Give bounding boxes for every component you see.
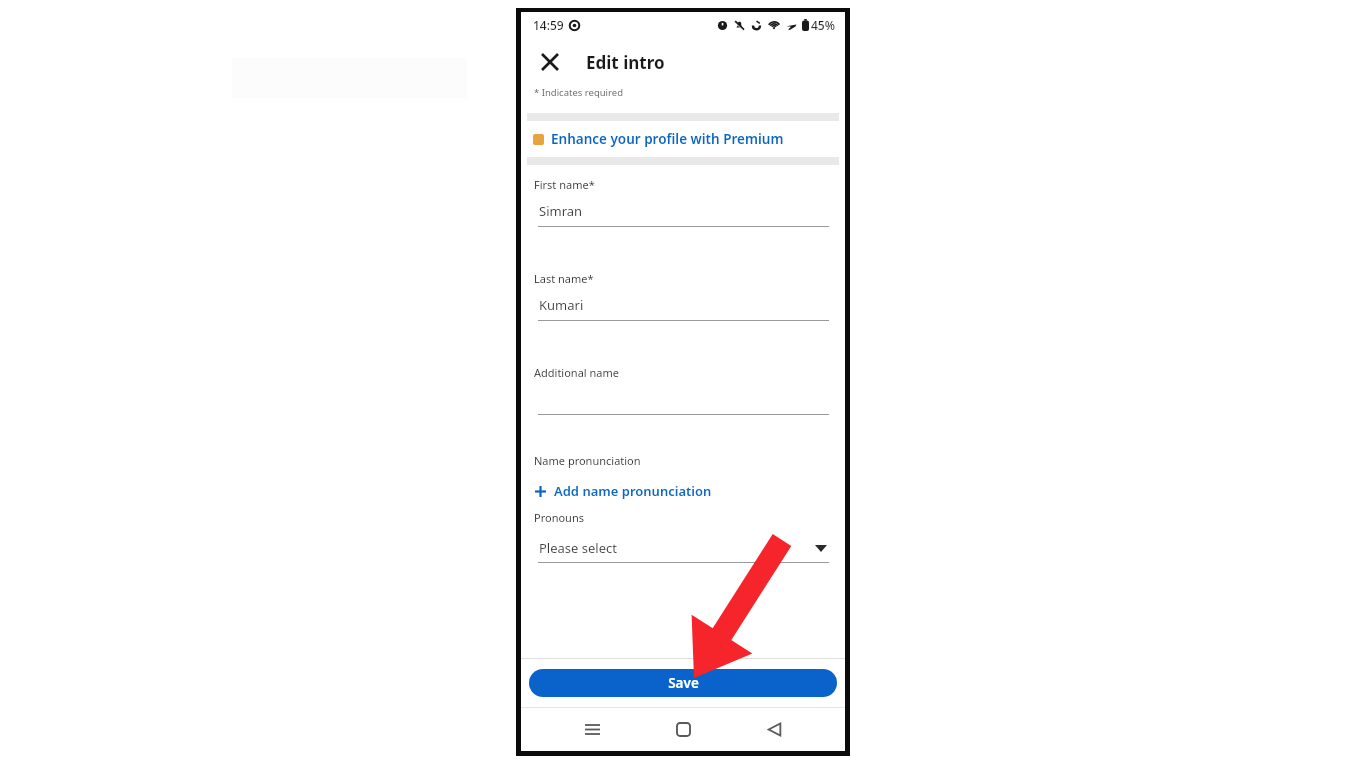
- staticText: * Indicates required: [534, 86, 623, 99]
- button[interactable]: Save: [529, 669, 837, 697]
- button[interactable]: Home: [663, 709, 703, 749]
- staticText: Simran: [539, 202, 583, 220]
- staticText: Save: [668, 674, 699, 692]
- button[interactable]: Please select: [521, 537, 845, 563]
- button[interactable]: Simran: [521, 202, 845, 227]
- staticText: Pronouns: [534, 510, 584, 525]
- staticText: Additional name: [534, 365, 619, 380]
- staticText: Enhance your profile with Premium: [551, 130, 784, 148]
- staticText: Kumari: [539, 296, 584, 314]
- button[interactable]: Back: [754, 709, 794, 749]
- button[interactable]: Add name pronunciation: [521, 480, 712, 502]
- staticText: 45%: [811, 17, 835, 33]
- button[interactable]: Kumari: [521, 296, 845, 321]
- staticText: Name pronunciation: [534, 453, 641, 468]
- button[interactable]: Enhance your profile with Premium: [521, 121, 845, 157]
- staticText: Add name pronunciation: [554, 482, 712, 500]
- staticText: Please select: [539, 539, 617, 557]
- button[interactable]: Close: [531, 43, 569, 81]
- button[interactable]: Recents: [572, 709, 612, 749]
- button[interactable]: [521, 390, 845, 415]
- staticText: Last name*: [534, 271, 594, 286]
- staticText: Edit intro: [586, 51, 665, 74]
- staticText: First name*: [534, 177, 595, 192]
- staticText: 14:59: [533, 17, 564, 33]
